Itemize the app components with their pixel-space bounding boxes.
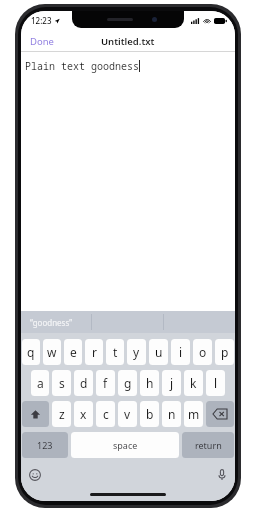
staticText: 123	[37, 439, 53, 451]
button[interactable]: t	[106, 339, 124, 365]
button[interactable]: Shift	[22, 401, 49, 427]
button[interactable]: space	[71, 432, 179, 458]
staticText: z	[59, 406, 65, 422]
staticText: y	[133, 344, 140, 360]
button[interactable]: a	[31, 370, 49, 396]
button[interactable]: 123	[22, 432, 68, 458]
staticText: p	[221, 344, 229, 360]
button[interactable]: j	[162, 370, 181, 396]
staticText: h	[146, 375, 154, 391]
button[interactable]: h	[140, 370, 159, 396]
button[interactable]: v	[118, 401, 137, 427]
button[interactable]: Done	[21, 32, 63, 51]
staticText: Untitled.txt	[101, 35, 155, 48]
staticText: j	[170, 375, 174, 391]
button[interactable]: s	[52, 370, 71, 396]
button[interactable]: o	[193, 339, 212, 365]
staticText: b	[146, 406, 154, 422]
button[interactable]: d	[74, 370, 93, 396]
staticText: t	[113, 344, 118, 360]
button[interactable]: f	[96, 370, 115, 396]
button[interactable]: i	[171, 339, 190, 365]
button[interactable]: l	[206, 370, 225, 396]
staticText: space	[113, 439, 138, 451]
button[interactable]: m	[184, 401, 203, 427]
staticText: “goodness”	[30, 317, 73, 328]
staticText: q	[27, 344, 35, 360]
staticText: k	[190, 375, 197, 391]
button[interactable]: u	[149, 339, 168, 365]
button[interactable]: n	[162, 401, 181, 427]
button[interactable]: r	[85, 339, 103, 365]
button[interactable]: Delete	[206, 401, 234, 427]
button[interactable]: k	[184, 370, 203, 396]
button[interactable]: x	[74, 401, 93, 427]
button[interactable]: return	[182, 432, 234, 458]
staticText: d	[80, 375, 88, 391]
staticText: 12:23	[31, 15, 52, 26]
button[interactable]: z	[52, 401, 71, 427]
staticText: c	[103, 406, 109, 422]
button[interactable]: “goodness”	[21, 311, 91, 333]
staticText: x	[80, 406, 87, 422]
button[interactable]: Emoji	[26, 466, 44, 484]
staticText: m	[188, 406, 200, 422]
button[interactable]: q	[22, 339, 40, 365]
staticText: i	[179, 344, 183, 360]
staticText: s	[59, 375, 65, 391]
button[interactable]: c	[96, 401, 115, 427]
button[interactable]: Dictation	[215, 466, 229, 484]
staticText: Done	[30, 35, 54, 48]
button[interactable]: e	[64, 339, 82, 365]
staticText: e	[70, 344, 77, 360]
staticText: o	[199, 344, 207, 360]
staticText: v	[124, 406, 131, 422]
button[interactable]: y	[127, 339, 146, 365]
staticText: g	[124, 375, 132, 391]
staticText: l	[214, 375, 218, 391]
staticText: return	[195, 439, 222, 451]
staticText: f	[103, 375, 108, 391]
staticText: Plain text goodness	[25, 59, 139, 73]
staticText: n	[168, 406, 176, 422]
staticText: r	[92, 344, 97, 360]
staticText: u	[155, 344, 163, 360]
button[interactable]: w	[43, 339, 61, 365]
button[interactable]: p	[215, 339, 234, 365]
staticText: w	[47, 344, 57, 360]
staticText: a	[37, 375, 44, 391]
button[interactable]: b	[140, 401, 159, 427]
button[interactable]: g	[118, 370, 137, 396]
